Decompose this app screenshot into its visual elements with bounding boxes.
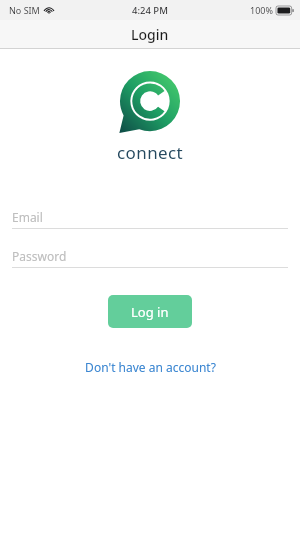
staticText: 4:24 PM <box>132 4 168 17</box>
staticText: Password <box>12 248 67 264</box>
staticText: 100% <box>250 4 273 16</box>
staticText: No SIM <box>9 4 40 16</box>
button[interactable]: Don't have an account? <box>77 355 224 379</box>
staticText: Login <box>131 25 169 44</box>
button[interactable]: Email <box>0 206 300 229</box>
staticText: Don't have an account? <box>85 359 216 375</box>
staticText: Email <box>12 209 43 225</box>
staticText: connect <box>117 141 184 164</box>
button[interactable]: Password <box>0 245 300 268</box>
staticText: Log in <box>131 303 169 321</box>
button[interactable]: Log in <box>108 295 192 328</box>
